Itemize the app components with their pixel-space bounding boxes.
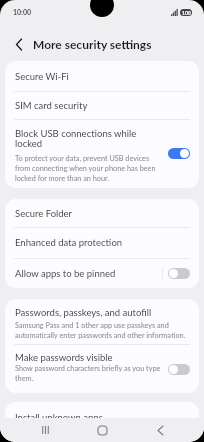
button[interactable] [168,148,190,159]
staticText: Secure Folder [15,208,73,219]
staticText: Allow apps to be pinned [15,268,162,279]
staticText: Install unknown apps [15,412,103,423]
button[interactable] [168,364,190,375]
button[interactable]: Install unknown apps [5,402,199,432]
button[interactable]: Back [147,418,173,442]
button[interactable]: Make passwords visible [5,344,199,393]
button[interactable]: Passwords, passkeys, and autofill [5,299,199,344]
button[interactable] [168,268,190,279]
staticText: 10:00 [13,8,32,16]
staticText: Passwords, passkeys, and autofill [15,307,152,318]
button[interactable]: Secure Folder [5,199,199,227]
staticText: More security settings [33,37,152,51]
staticText: Show password characters briefly as you … [15,363,161,383]
button[interactable]: Secure Wi-Fi [5,61,199,91]
staticText: Block USB connections while locked [15,128,161,149]
staticText: 100 [182,10,191,16]
staticText: To protect your data, prevent USB device… [15,153,161,183]
button[interactable]: Block USB connections while locked [5,119,199,188]
button[interactable]: Recent apps [32,418,58,442]
staticText: SIM card security [15,100,88,111]
button[interactable]: Home [89,418,115,442]
button[interactable]: Allow apps to be pinned [5,258,199,288]
staticText: Samsung Pass and 1 other app use passkey… [15,320,190,340]
button[interactable]: Navigate up [11,36,27,52]
staticText: Enhanced data protection [15,237,123,248]
staticText: Make passwords visible [15,352,113,363]
button[interactable]: SIM card security [5,91,199,119]
button[interactable]: Enhanced data protection [5,227,199,258]
staticText: Secure Wi-Fi [15,71,69,82]
